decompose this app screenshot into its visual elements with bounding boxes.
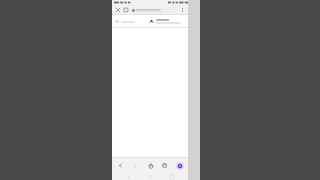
button[interactable]: Tracking protection xyxy=(122,6,129,13)
button[interactable]: Forward xyxy=(129,159,142,172)
button[interactable]: Close xyxy=(114,6,121,13)
button[interactable]: Tabs xyxy=(158,159,171,172)
button[interactable]: More options xyxy=(179,6,186,13)
button[interactable] xyxy=(149,19,185,24)
button[interactable]: System back xyxy=(124,173,133,180)
button[interactable] xyxy=(130,7,178,13)
button[interactable]: Back xyxy=(114,159,127,172)
button[interactable]: Recent apps xyxy=(167,173,176,180)
button[interactable]: Home xyxy=(144,159,157,172)
button[interactable]: System home xyxy=(146,173,155,180)
button[interactable] xyxy=(115,20,149,23)
button[interactable]: Account xyxy=(173,159,186,172)
